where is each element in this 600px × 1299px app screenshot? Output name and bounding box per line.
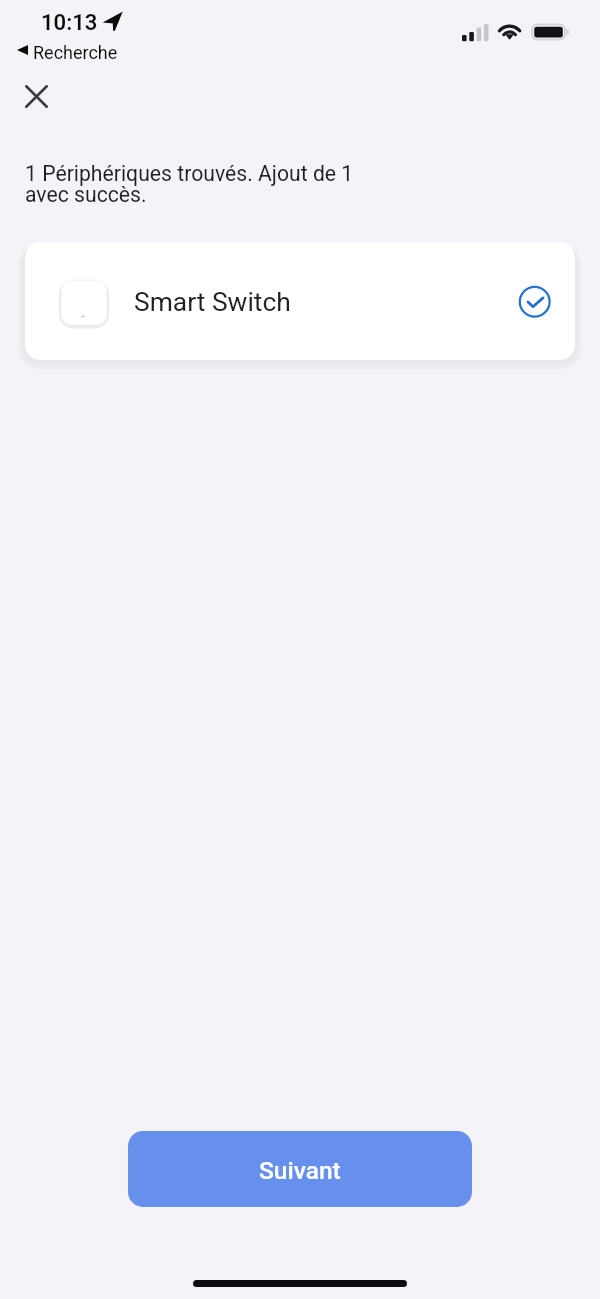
button[interactable]: Close [12, 72, 60, 120]
staticText: Smart Switch [134, 287, 291, 318]
button[interactable]: Selected [515, 282, 553, 320]
button[interactable]: Suivant [128, 1131, 472, 1207]
staticText: Suivant [259, 1156, 341, 1185]
staticText: 1 Périphériques trouvés. Ajout de 1 avec… [25, 161, 357, 208]
button[interactable]: Smart Switch [25, 242, 575, 360]
staticText: Recherche [33, 42, 118, 63]
staticText: 10:13 [41, 10, 98, 36]
